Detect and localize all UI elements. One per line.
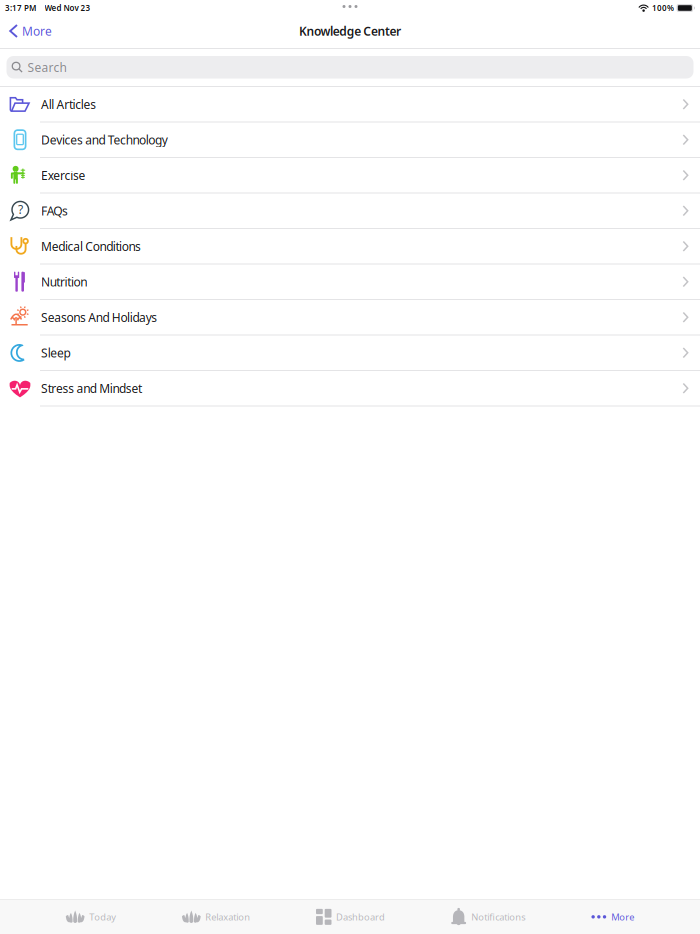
button[interactable]: More (0, 16, 62, 46)
staticText: Seasons And Holidays (41, 309, 157, 325)
staticText: FAQs (41, 203, 68, 219)
staticText: All Articles (41, 96, 96, 112)
button[interactable]: All Articles (0, 87, 700, 122)
button[interactable]: Relaxation (182, 900, 250, 934)
button[interactable]: Nutrition (0, 264, 700, 300)
staticText: Stress and Mindset (41, 380, 142, 396)
button[interactable]: Dashboard (316, 900, 385, 934)
button[interactable]: Stress and Mindset (0, 371, 700, 406)
staticText: Dashboard (336, 911, 385, 923)
button[interactable]: ? (0, 193, 700, 229)
staticText: Search (27, 59, 66, 75)
staticText: Medical Conditions (41, 238, 141, 254)
button[interactable]: Seasons And Holidays (0, 300, 700, 335)
staticText: Relaxation (205, 911, 250, 923)
staticText: 100% (652, 3, 674, 13)
button[interactable]: More (591, 900, 634, 934)
staticText: Wed Nov 23 (44, 3, 90, 13)
button[interactable]: Notifications (451, 900, 525, 934)
button[interactable]: Medical Conditions (0, 229, 700, 264)
staticText: 3:17 PM (5, 3, 36, 13)
staticText: Devices and Technology (41, 132, 168, 148)
button[interactable]: Sleep (0, 335, 700, 371)
button[interactable]: Exercise (0, 158, 700, 193)
staticText: Sleep (41, 345, 71, 361)
button[interactable]: Devices and Technology (0, 122, 700, 158)
staticText: Notifications (471, 911, 525, 923)
staticText: Nutrition (41, 274, 87, 290)
staticText: ? (18, 201, 23, 217)
staticText: More (22, 23, 52, 39)
staticText: Exercise (41, 167, 86, 183)
staticText: Knowledge Center (299, 23, 401, 39)
button[interactable]: Today (66, 900, 116, 934)
staticText: More (611, 911, 634, 923)
staticText: Today (89, 911, 116, 923)
